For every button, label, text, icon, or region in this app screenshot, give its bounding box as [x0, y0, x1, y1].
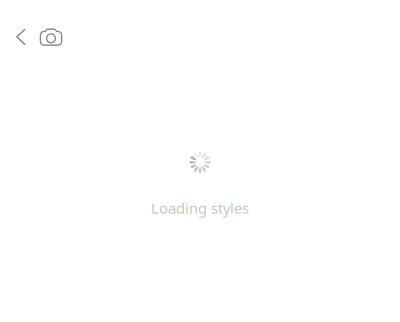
button[interactable]: Camera	[34, 18, 68, 56]
staticText: Loading styles	[151, 198, 249, 218]
button[interactable]: Back	[8, 18, 34, 56]
